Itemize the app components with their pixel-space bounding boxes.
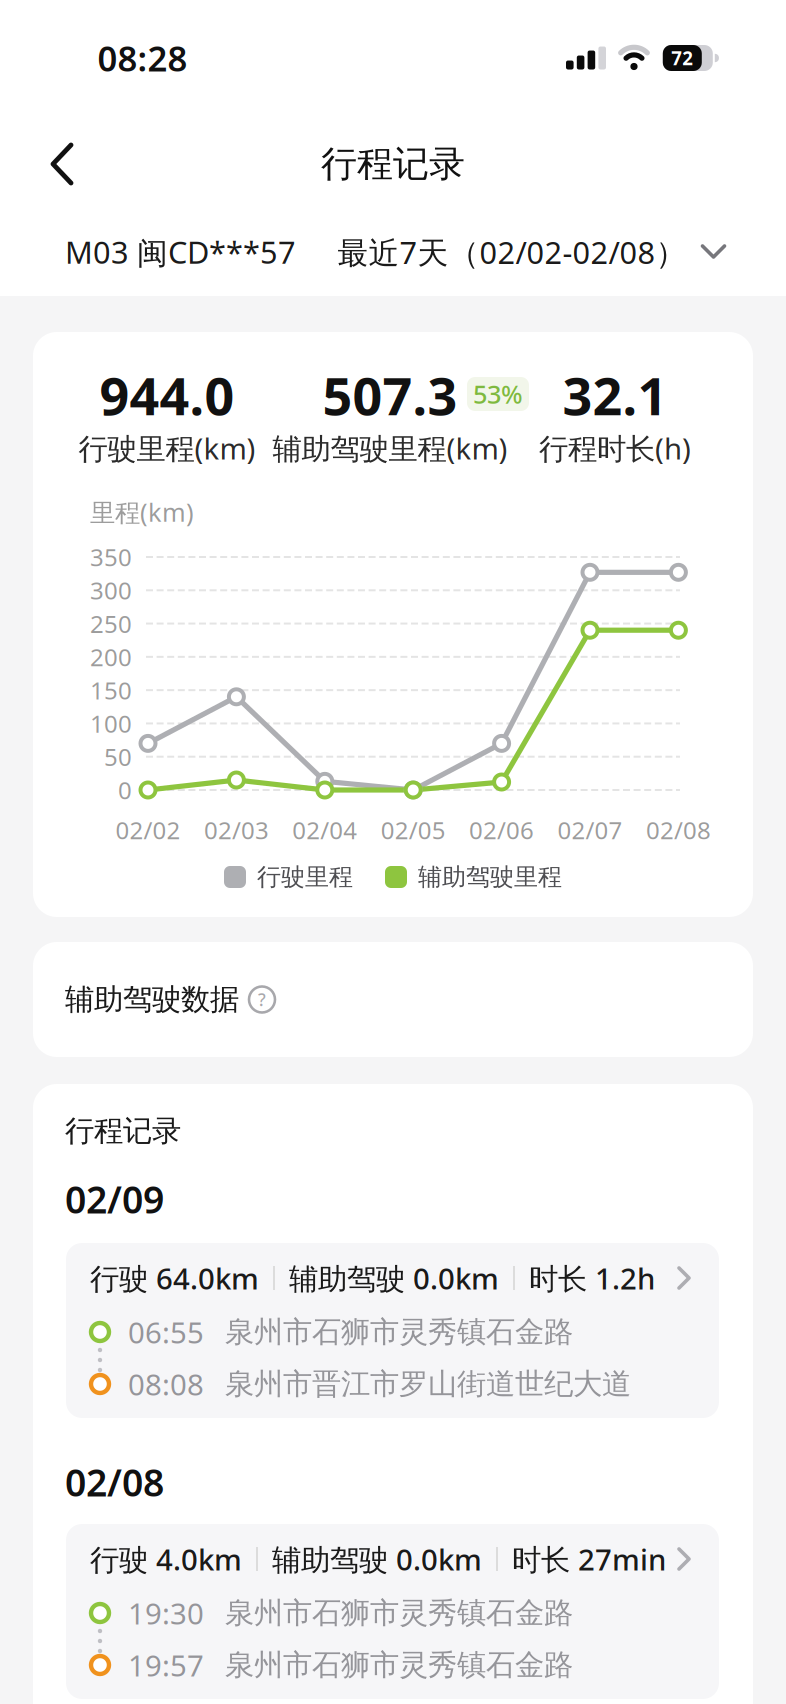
button[interactable]: 行程详情 — [66, 1243, 719, 1418]
staticText: 行驶里程 — [257, 862, 353, 892]
staticText: 行驶 4.0km — [90, 1539, 242, 1578]
staticText: 02/06 — [469, 814, 534, 846]
staticText: 02/07 — [557, 814, 622, 846]
staticText: 泉州市晋江市罗山街道世纪大道 — [225, 1366, 631, 1402]
staticText: 辅助驾驶 0.0km — [272, 1539, 482, 1578]
staticText: 06:55 — [128, 1312, 204, 1351]
staticText: 53% — [473, 377, 523, 411]
button[interactable]: 辅助驾驶数据 — [33, 942, 753, 1057]
staticText: 02/02 — [115, 814, 180, 846]
staticText: 02/08 — [646, 814, 711, 846]
staticText: 32.1 — [562, 360, 667, 430]
staticText: M03 闽CD***57 — [65, 232, 296, 272]
staticText: 行驶里程(km) — [78, 428, 255, 467]
staticText: 里程(km) — [90, 495, 194, 529]
staticText: 泉州市石狮市灵秀镇石金路 — [225, 1314, 573, 1350]
staticText: 300 — [90, 574, 132, 606]
staticText: 944.0 — [99, 360, 234, 430]
staticText: 08:08 — [128, 1364, 204, 1403]
button[interactable]: 行程详情 — [66, 1524, 719, 1699]
button[interactable]: 选择日期范围 — [337, 220, 726, 284]
button[interactable]: 选择车辆 — [65, 220, 296, 284]
staticText: 100 — [90, 707, 132, 739]
staticText: 0 — [118, 774, 132, 806]
staticText: 行驶 64.0km — [90, 1258, 259, 1297]
staticText: 最近7天（02/02-02/08） — [337, 232, 686, 272]
staticText: 72 — [671, 46, 693, 70]
staticText: ? — [258, 988, 266, 1011]
staticText: 时长 1.2h — [529, 1258, 655, 1297]
staticText: 350 — [90, 541, 132, 573]
staticText: 50 — [104, 741, 132, 773]
staticText: 02/05 — [381, 814, 446, 846]
staticText: 507.3 — [322, 360, 457, 430]
staticText: 02/03 — [204, 814, 269, 846]
staticText: 02/09 — [65, 1174, 164, 1224]
staticText: 行程时长(h) — [539, 428, 691, 467]
staticText: 19:30 — [128, 1593, 204, 1632]
staticText: 辅助驾驶 0.0km — [289, 1258, 499, 1297]
staticText: 200 — [90, 641, 132, 673]
staticText: 泉州市石狮市灵秀镇石金路 — [225, 1647, 573, 1683]
button[interactable]: Back — [18, 120, 106, 208]
staticText: 行程记录 — [321, 142, 465, 186]
staticText: 时长 27min — [512, 1539, 666, 1578]
staticText: 150 — [90, 674, 132, 706]
staticText: 行程记录 — [65, 1113, 181, 1149]
staticText: 08:28 — [97, 35, 187, 81]
staticText: 辅助驾驶里程(km) — [272, 428, 507, 467]
staticText: 泉州市石狮市灵秀镇石金路 — [225, 1595, 573, 1631]
staticText: 辅助驾驶里程 — [418, 862, 562, 892]
staticText: 19:57 — [128, 1645, 204, 1684]
staticText: 辅助驾驶数据 — [65, 981, 239, 1017]
staticText: 02/04 — [292, 814, 357, 846]
staticText: 250 — [90, 608, 132, 639]
staticText: 02/08 — [65, 1457, 164, 1507]
